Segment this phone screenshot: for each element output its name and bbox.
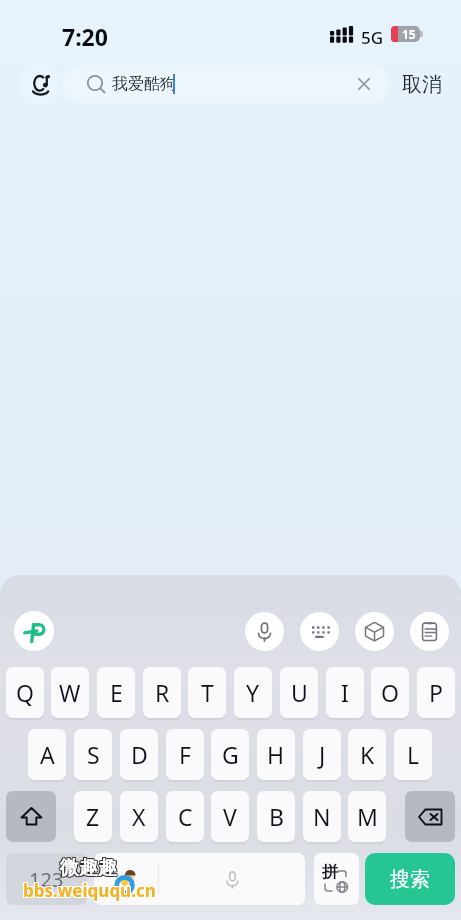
staticText: bbs.weiququ.cn <box>22 878 155 901</box>
staticText: V <box>223 801 237 832</box>
staticText: G <box>222 739 239 770</box>
button[interactable]: X <box>120 791 158 842</box>
staticText: O <box>381 677 399 708</box>
button[interactable]: T <box>188 667 226 718</box>
button[interactable]: Backspace <box>405 791 455 842</box>
staticText: N <box>313 801 331 832</box>
staticText: M <box>357 801 378 832</box>
button[interactable]: Space <box>159 853 305 905</box>
staticText: 搜索 <box>390 867 430 892</box>
button[interactable]: G <box>211 729 249 780</box>
staticText: bbs.weiququ.cn <box>23 880 156 903</box>
staticText: 取消 <box>402 72 442 97</box>
button[interactable]: Keyboard layout <box>300 612 339 651</box>
button[interactable]: B <box>257 791 295 842</box>
button[interactable]: O <box>371 667 409 718</box>
staticText: bbs.weiququ.cn <box>24 878 157 901</box>
button[interactable]: U <box>280 667 318 718</box>
button[interactable]: S <box>74 729 112 780</box>
staticText: 微趣趣 <box>59 855 116 879</box>
button[interactable]: M <box>348 791 386 842</box>
button[interactable]: F <box>166 729 204 780</box>
button[interactable]: Shift <box>6 791 56 842</box>
staticText: 微趣趣 <box>59 856 116 880</box>
button[interactable]: 123 <box>6 853 87 905</box>
staticText: R <box>155 677 170 708</box>
staticText: L <box>407 739 420 770</box>
staticText: 微趣趣 <box>60 855 117 879</box>
button[interactable]: K <box>348 729 386 780</box>
button[interactable]: KuGou <box>18 63 60 105</box>
staticText: D <box>131 739 148 770</box>
button[interactable]: E <box>97 667 135 718</box>
staticText: I <box>341 677 349 708</box>
staticText: 7:20 <box>62 21 108 52</box>
button[interactable]: J <box>303 729 341 780</box>
button[interactable]: V <box>211 791 249 842</box>
staticText: T <box>201 677 214 708</box>
button[interactable]: W <box>51 667 89 718</box>
staticText: W <box>59 677 81 708</box>
button[interactable]: 取消 <box>399 65 445 103</box>
staticText: B <box>269 801 284 832</box>
button[interactable]: I <box>326 667 364 718</box>
staticText: bbs.weiququ.cn <box>23 879 156 902</box>
staticText: P <box>429 677 443 708</box>
button[interactable]: Voice input <box>245 612 284 651</box>
staticText: 我爱酷狗 <box>112 74 176 94</box>
staticText: A <box>40 739 55 770</box>
button[interactable]: Input method <box>14 611 54 651</box>
button[interactable]: L <box>394 729 432 780</box>
button[interactable]: Clipboard <box>410 612 449 651</box>
staticText: bbs.weiququ.cn <box>23 878 156 901</box>
button[interactable]: Emoji <box>94 853 158 905</box>
staticText: 微趣趣 <box>61 857 118 881</box>
staticText: Q <box>16 677 34 708</box>
staticText: bbs.weiququ.cn <box>22 879 155 902</box>
staticText: 123 <box>29 866 64 893</box>
staticText: bbs.weiququ.cn <box>24 880 157 903</box>
staticText: bbs.weiququ.cn <box>24 879 157 902</box>
button[interactable]: H <box>257 729 295 780</box>
button[interactable]: Switch language <box>314 853 359 905</box>
button[interactable]: R <box>143 667 181 718</box>
staticText: 微趣趣 <box>61 855 118 879</box>
staticText: 微趣趣 <box>60 857 117 881</box>
button[interactable]: 我爱酷狗 <box>63 65 389 103</box>
button[interactable]: Q <box>6 667 44 718</box>
staticText: H <box>267 739 285 770</box>
button[interactable]: N <box>303 791 341 842</box>
button[interactable]: 搜索 <box>365 853 455 905</box>
button[interactable]: Clear <box>353 73 375 95</box>
button[interactable]: Y <box>234 667 272 718</box>
staticText: 5G <box>361 26 384 49</box>
staticText: 微趣趣 <box>60 856 117 880</box>
staticText: U <box>291 677 308 708</box>
staticText: bbs.weiququ.cn <box>22 880 155 903</box>
button[interactable]: P <box>417 667 455 718</box>
staticText: C <box>178 801 193 832</box>
button[interactable]: D <box>120 729 158 780</box>
staticText: 微趣趣 <box>61 856 118 880</box>
staticText: J <box>319 739 326 770</box>
staticText: K <box>360 739 375 770</box>
staticText: S <box>87 739 100 770</box>
staticText: Y <box>246 677 260 708</box>
staticText: X <box>132 801 146 832</box>
staticText: 15 <box>402 26 416 42</box>
button[interactable]: C <box>166 791 204 842</box>
button[interactable]: A <box>28 729 66 780</box>
staticText: E <box>110 677 123 708</box>
staticText: F <box>179 739 191 770</box>
staticText: 拼 <box>322 862 338 882</box>
staticText: Z <box>86 801 100 832</box>
staticText: 微趣趣 <box>59 857 116 881</box>
button[interactable]: Stickers <box>355 612 394 651</box>
button[interactable]: Z <box>74 791 112 842</box>
